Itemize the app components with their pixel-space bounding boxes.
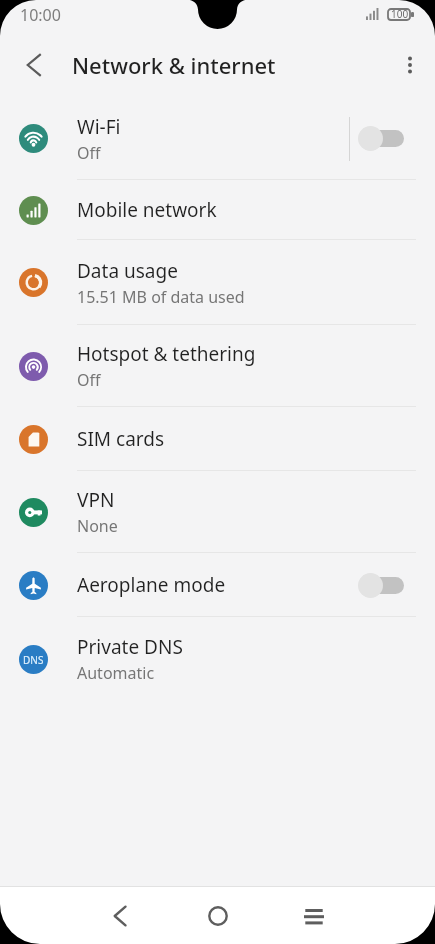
button[interactable]: Aeroplane mode switch [344, 553, 404, 617]
staticText: SIM cards [77, 426, 165, 452]
button[interactable]: More options [385, 32, 435, 97]
staticText: 15.51 MB of data used [77, 286, 245, 308]
button[interactable]: Back [98, 894, 142, 938]
button[interactable]: Wi-Fi [0, 97, 435, 180]
staticText: Wi-Fi [77, 114, 121, 140]
button[interactable]: Home [196, 894, 240, 938]
staticText: Data usage [77, 258, 178, 284]
staticText: Off [77, 369, 101, 391]
staticText: 100 [391, 7, 409, 21]
staticText: Mobile network [77, 197, 217, 223]
staticText: 10:00 [20, 4, 61, 26]
button[interactable]: Mobile network [0, 180, 435, 240]
button[interactable]: Recent apps [292, 894, 336, 938]
button[interactable]: Data usage [0, 240, 435, 325]
button[interactable]: DNS [0, 617, 435, 701]
button[interactable]: Aeroplane mode [0, 553, 435, 617]
staticText: Aeroplane mode [77, 572, 226, 598]
button[interactable]: Hotspot & tethering [0, 325, 435, 407]
button[interactable]: SIM cards [0, 407, 435, 471]
staticText: Automatic [77, 662, 155, 684]
staticText: Hotspot & tethering [77, 341, 256, 367]
staticText: None [77, 515, 118, 537]
staticText: VPN [77, 487, 115, 513]
staticText: Private DNS [77, 634, 183, 660]
button[interactable]: VPN [0, 471, 435, 553]
staticText: Network & internet [72, 50, 276, 80]
button[interactable]: Navigate up [0, 32, 67, 97]
staticText: DNS [23, 653, 44, 667]
button[interactable]: Wi-Fi switch [344, 97, 404, 180]
staticText: Off [77, 142, 101, 164]
